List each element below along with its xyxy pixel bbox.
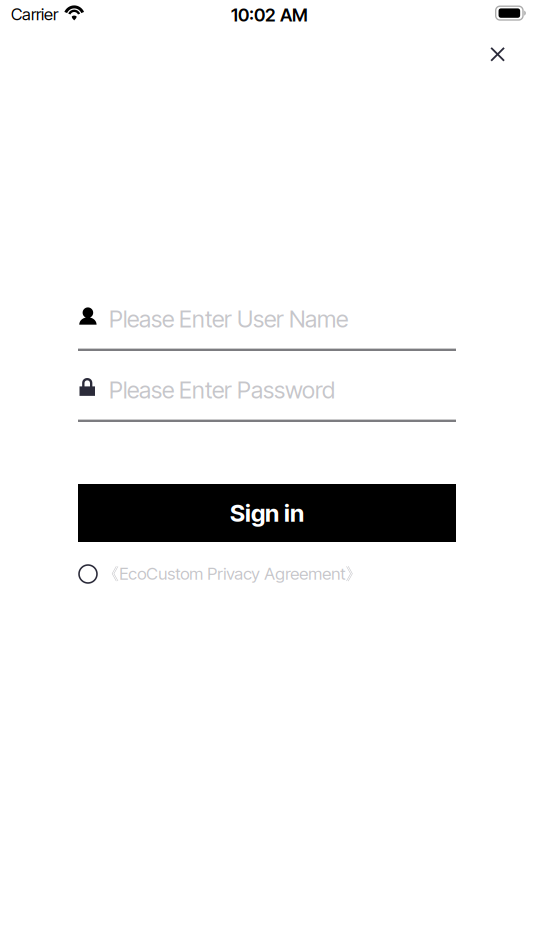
button[interactable]: Close — [475, 31, 521, 77]
button[interactable]: Please Enter User Name — [78, 293, 456, 350]
button[interactable]: Agree to privacy agreement — [71, 557, 105, 591]
staticText: Please Enter User Name — [109, 305, 348, 333]
staticText: Carrier — [11, 4, 58, 24]
button[interactable]: Please Enter Password — [78, 364, 456, 421]
button[interactable]: 《EcoCustom Privacy Agreement》 — [102, 557, 362, 591]
staticText: Sign in — [230, 498, 304, 527]
staticText: Please Enter Password — [109, 376, 335, 404]
staticText: 10:02 AM — [231, 4, 308, 26]
button[interactable]: Sign in — [78, 484, 456, 542]
staticText: 《EcoCustom Privacy Agreement》 — [102, 563, 362, 585]
